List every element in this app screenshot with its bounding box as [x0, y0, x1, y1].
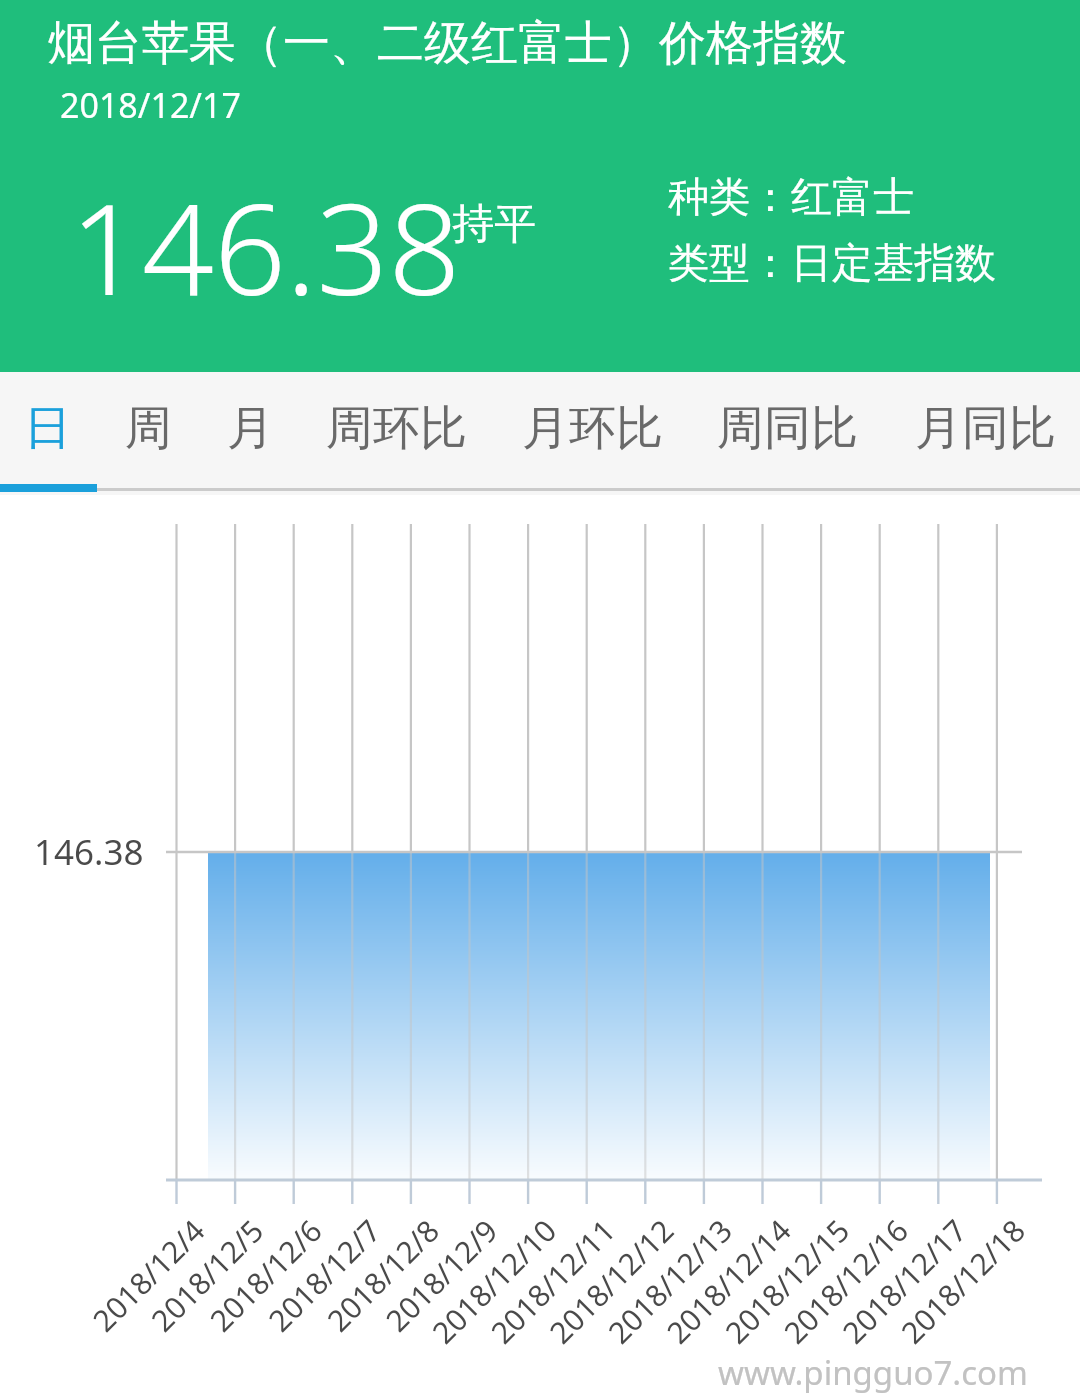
staticText: 周环比 [326, 399, 467, 458]
staticText: 日 [24, 399, 71, 458]
button[interactable]: 月环比 [508, 372, 676, 484]
staticText: 2018/12/17 [60, 82, 241, 128]
button[interactable]: 月同比 [900, 372, 1070, 484]
staticText: 146.38 [70, 160, 461, 332]
button[interactable]: 月 [212, 372, 288, 484]
button[interactable]: 周 [110, 372, 186, 484]
staticText: 月同比 [915, 399, 1056, 458]
staticText: 种类：红富士 [668, 172, 914, 224]
button[interactable]: 周环比 [310, 372, 482, 484]
staticText: 烟台苹果（一、二级红富士）价格指数 [48, 14, 847, 73]
staticText: 周同比 [717, 399, 858, 458]
staticText: 月 [227, 399, 274, 458]
staticText: 周 [125, 399, 172, 458]
button[interactable]: 日 [19, 372, 76, 484]
staticText: 月环比 [522, 399, 663, 458]
button[interactable]: 周同比 [702, 372, 872, 484]
staticText: 类型：日定基指数 [668, 238, 996, 290]
staticText: 持平 [452, 198, 536, 251]
